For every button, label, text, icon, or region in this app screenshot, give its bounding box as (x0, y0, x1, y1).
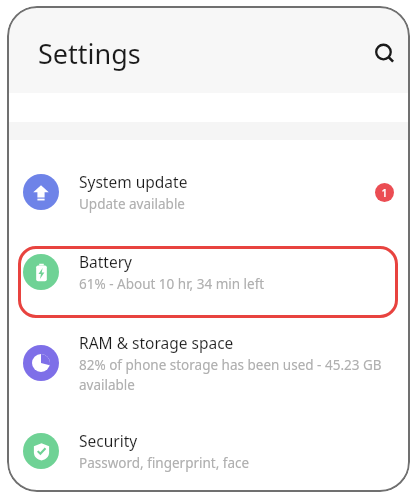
staticText: Security (79, 430, 138, 451)
button[interactable]: RAM & storage space (7, 313, 410, 413)
staticText: System update (79, 171, 188, 192)
staticText: Update available (79, 195, 185, 213)
staticText: Settings (38, 35, 141, 72)
staticText: RAM & storage space (79, 332, 234, 353)
staticText: Battery (79, 251, 133, 272)
button[interactable]: Security (7, 413, 410, 489)
button[interactable]: Search (363, 32, 407, 76)
staticText: 1 (381, 186, 388, 200)
button[interactable]: Battery (7, 230, 410, 313)
staticText: 61% - About 10 hr, 34 min left (79, 275, 265, 293)
staticText: Password, fingerprint, face (79, 454, 250, 472)
staticText: 82% of phone storage has been used - 45.… (79, 356, 394, 394)
button[interactable]: System update (7, 154, 410, 230)
